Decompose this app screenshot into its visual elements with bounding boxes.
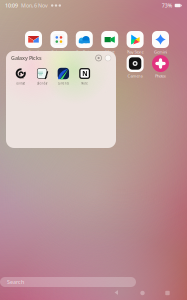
button[interactable]: Widget settings <box>96 55 102 61</box>
staticText: Note <box>81 82 88 85</box>
button[interactable]: Meet <box>98 31 121 54</box>
staticText: OneDrive <box>76 49 93 54</box>
staticText: calendar <box>37 82 48 85</box>
button[interactable]: Home <box>139 289 146 296</box>
staticText: Mon, 6 Nov <box>21 2 48 9</box>
button[interactable]: Recents <box>164 289 171 296</box>
button[interactable]: More <box>105 55 111 61</box>
staticText: Gmail <box>28 49 39 54</box>
staticText: Calendar <box>51 49 67 54</box>
button[interactable]: Camera <box>124 55 147 78</box>
button[interactable]: Back <box>114 289 121 296</box>
staticText: Photos <box>155 73 166 78</box>
staticText: Camera <box>128 73 143 78</box>
button[interactable]: Play Store <box>124 31 147 54</box>
button[interactable]: currents <box>53 67 74 85</box>
button[interactable]: Photos <box>149 55 172 78</box>
staticText: N <box>82 69 87 78</box>
button[interactable]: OneDrive <box>73 31 96 54</box>
button[interactable]: Gmail <box>22 31 45 54</box>
button[interactable]: Note <box>74 67 95 85</box>
staticText: Galaxy Picks <box>11 54 42 62</box>
staticText: 10:09 <box>5 2 18 9</box>
button[interactable]: calendar <box>32 67 52 85</box>
staticText: Search <box>7 278 24 286</box>
button[interactable]: contact <box>10 67 31 85</box>
button[interactable]: Calendar <box>47 31 70 54</box>
staticText: currents <box>58 82 69 85</box>
staticText: contact <box>16 82 25 85</box>
staticText: Gemini <box>154 49 167 54</box>
staticText: Meet <box>105 49 114 54</box>
staticText: 73% <box>162 2 173 9</box>
button[interactable]: Search <box>0 277 136 287</box>
staticText: Play Store <box>127 49 144 54</box>
button[interactable]: Gemini <box>149 31 172 54</box>
